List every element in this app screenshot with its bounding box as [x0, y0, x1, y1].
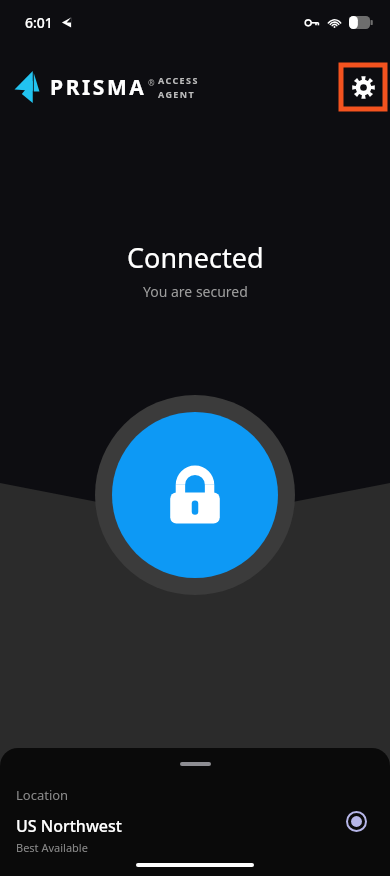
button[interactable]: PRISMA — [14, 71, 199, 103]
button[interactable]: Selected location — [336, 801, 376, 841]
staticText: Best Available — [16, 840, 88, 855]
staticText: PRISMA — [50, 73, 147, 102]
staticText: You are secured — [143, 282, 248, 301]
button[interactable]: Settings — [341, 65, 385, 109]
staticText: US Northwest — [16, 815, 122, 837]
staticText: ACCESS — [158, 74, 199, 86]
staticText: Location — [16, 786, 69, 804]
button[interactable]: Location — [0, 786, 390, 855]
button[interactable]: Disconnect VPN — [95, 395, 295, 595]
staticText: 6:01 — [25, 13, 53, 32]
staticText: Connected — [127, 239, 264, 276]
staticText: AGENT — [158, 88, 196, 100]
staticText: ® — [148, 77, 155, 88]
